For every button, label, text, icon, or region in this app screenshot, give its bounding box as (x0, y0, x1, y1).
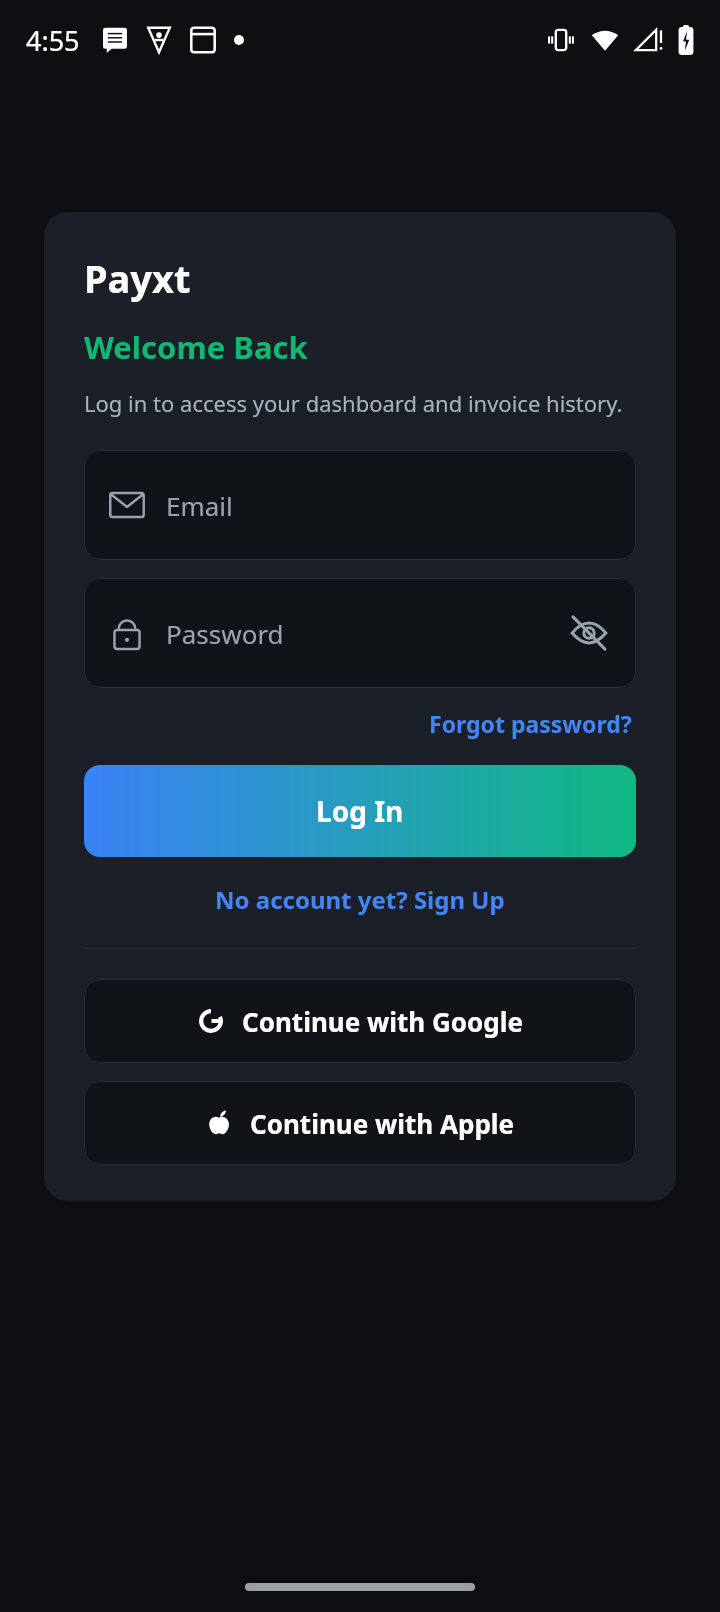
staticText: Continue with Apple (250, 1106, 515, 1141)
button[interactable]: Forgot password? (425, 704, 636, 743)
staticText: Continue with Google (242, 1004, 523, 1039)
button[interactable]: No account yet? Sign Up (209, 877, 511, 922)
button[interactable]: Log In (84, 765, 636, 857)
button[interactable]: Continue with Apple (84, 1081, 636, 1165)
button[interactable]: Show password (566, 610, 612, 656)
staticText: 4:55 (26, 22, 80, 59)
staticText: Log In (316, 792, 404, 830)
staticText: Payxt (84, 252, 191, 304)
button[interactable]: Email (84, 450, 636, 560)
button[interactable]: Password (84, 578, 636, 688)
staticText: Email (166, 488, 233, 523)
staticText: No account yet? Sign Up (215, 883, 505, 916)
staticText: Forgot password? (429, 708, 632, 739)
button[interactable]: Continue with Google (84, 979, 636, 1063)
staticText: Log in to access your dashboard and invo… (84, 388, 623, 418)
staticText: Password (166, 616, 284, 651)
staticText: Welcome Back (84, 326, 308, 368)
